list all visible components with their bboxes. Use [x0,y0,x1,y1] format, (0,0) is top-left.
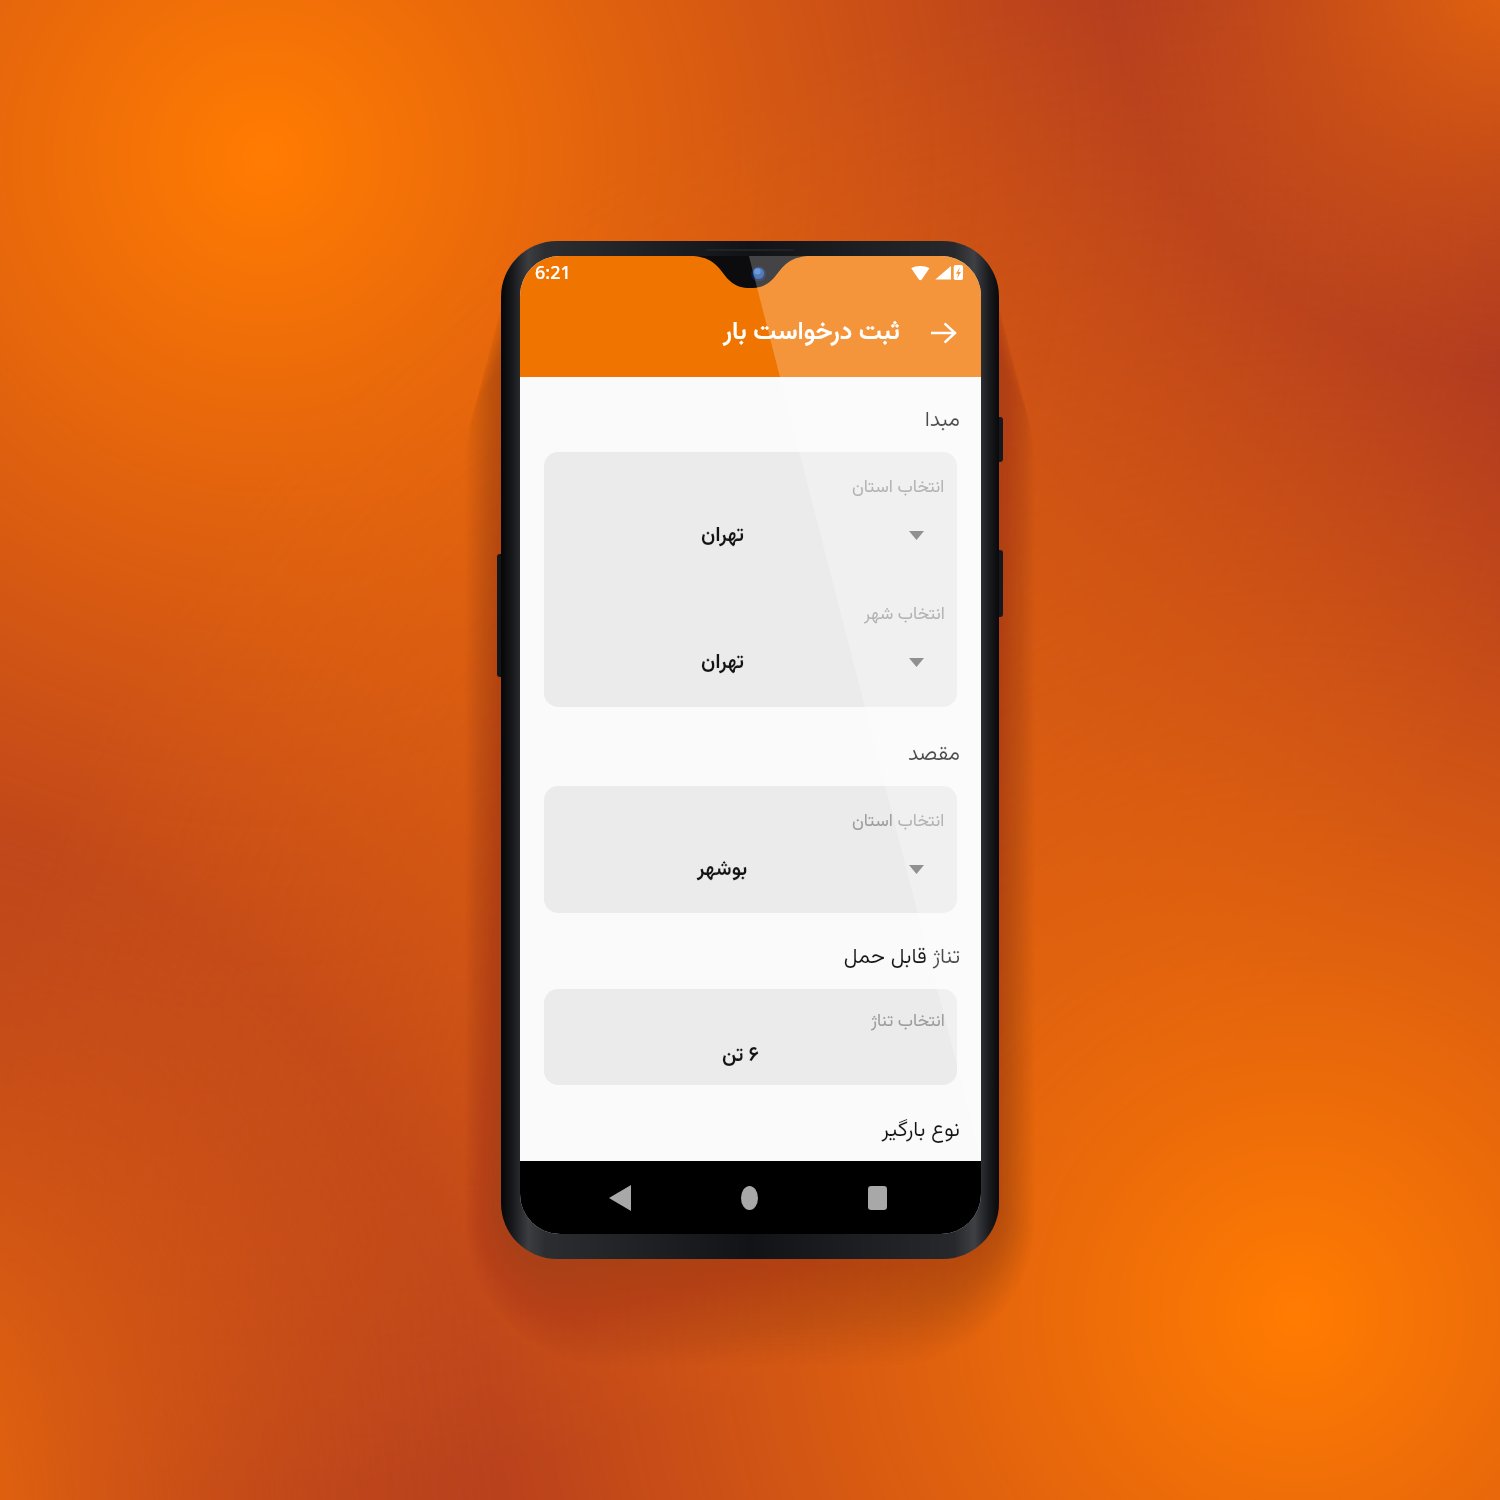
staticText: تهران [701,647,744,679]
staticText: بوشهر [697,854,748,886]
staticText: ثبت درخواست بار [723,313,900,353]
button[interactable]: انتخاب استان [544,786,957,913]
staticText: انتخاب استان [852,474,945,501]
button[interactable]: Back [917,307,968,358]
staticText: ۶ تن [721,1040,759,1072]
staticText: انتخاب تناژ [871,1008,945,1035]
staticText: مبدا [924,404,960,435]
button[interactable]: Home [726,1175,772,1221]
button[interactable]: انتخاب استان [544,452,957,707]
staticText: تناژ قابل حمل [843,941,960,972]
button[interactable]: Recent apps [854,1175,900,1221]
staticText: تهران [701,520,744,552]
staticText: 6:21 [535,260,571,284]
staticText: انتخاب شهر [864,601,945,628]
button[interactable]: Back [597,1175,643,1221]
button[interactable]: انتخاب تناژ [544,989,957,1085]
staticText: انتخاب استان [852,808,945,835]
staticText: مقصد [907,738,960,769]
staticText: نوع بارگیر [881,1114,960,1145]
